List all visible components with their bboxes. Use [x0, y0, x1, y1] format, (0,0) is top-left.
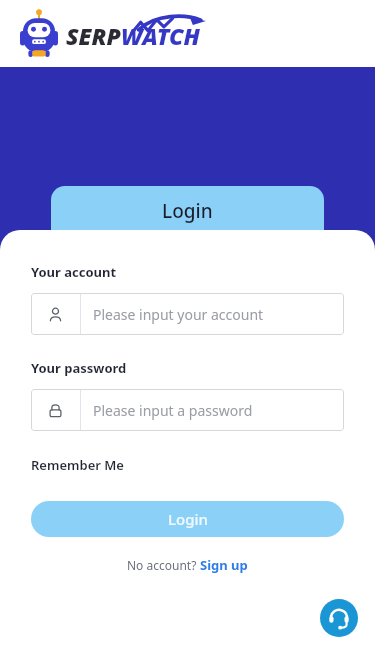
- button[interactable]: Remember Me: [31, 456, 124, 474]
- staticText: Your password: [31, 359, 127, 377]
- button[interactable]: Please input a password: [31, 389, 344, 431]
- staticText: Please input your account: [93, 305, 264, 324]
- button[interactable]: Customer support: [320, 599, 358, 637]
- staticText: Remember Me: [31, 456, 124, 474]
- staticText: Your account: [31, 263, 117, 281]
- button[interactable]: Sign up: [200, 556, 248, 574]
- button[interactable]: Please input your account: [31, 293, 344, 335]
- staticText: Login: [168, 509, 208, 529]
- staticText: Login: [162, 198, 213, 224]
- staticText: Please input a password: [93, 401, 253, 420]
- button[interactable]: Login: [31, 501, 344, 537]
- button[interactable]: Login: [51, 186, 324, 246]
- staticText: Sign up: [200, 556, 248, 574]
- staticText: No account?: [127, 557, 200, 573]
- staticText: SERP: [66, 20, 121, 51]
- staticText: WATCH: [121, 20, 200, 51]
